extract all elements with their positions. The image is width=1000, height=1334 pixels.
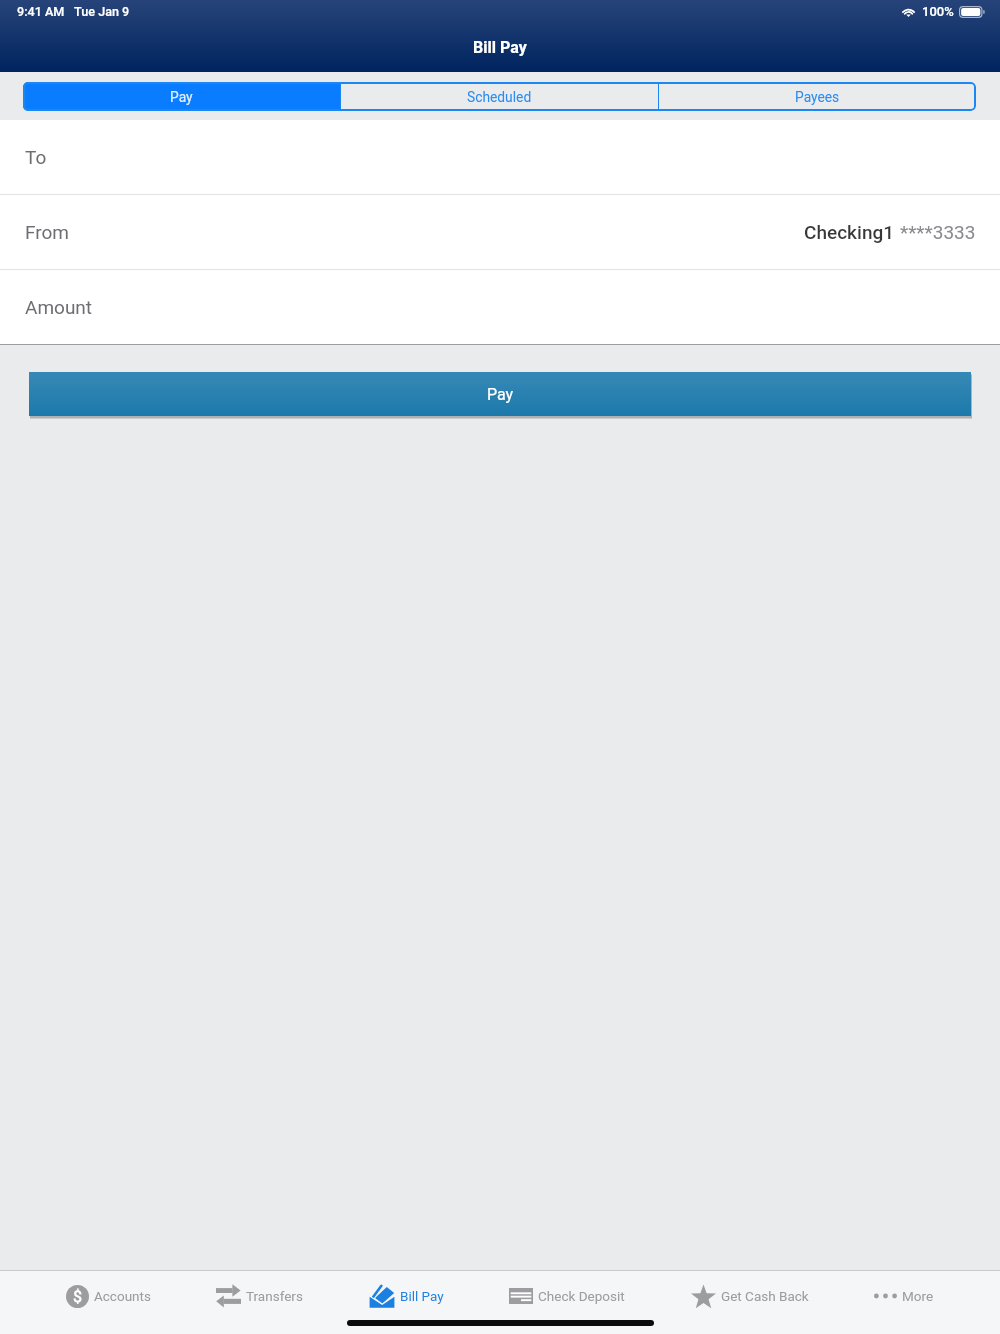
staticText: Transfers — [246, 1288, 303, 1304]
staticText: Check Deposit — [538, 1288, 625, 1304]
button[interactable]: Transfers — [216, 1271, 303, 1321]
staticText: 9:41 AM — [17, 4, 65, 19]
button[interactable]: Get Cash Back — [691, 1271, 809, 1321]
staticText: Tue Jan 9 — [74, 4, 130, 19]
button[interactable]: Bill Pay — [369, 1271, 444, 1321]
staticText: $ — [73, 1287, 83, 1306]
staticText: Bill Pay — [473, 38, 527, 57]
button[interactable]: Accounts — [66, 1271, 151, 1321]
button[interactable]: Pay — [29, 372, 971, 416]
button[interactable]: Payees — [659, 82, 976, 111]
staticText: Checking1 — [804, 221, 895, 243]
button[interactable]: To — [25, 120, 976, 194]
button[interactable]: Amount — [25, 270, 976, 344]
button[interactable]: Scheduled — [341, 82, 658, 111]
staticText: From — [25, 221, 70, 243]
button[interactable]: More — [874, 1271, 934, 1321]
staticText: Bill Pay — [400, 1288, 444, 1304]
button[interactable]: From — [25, 195, 976, 269]
staticText: Amount — [25, 296, 93, 318]
staticText: Pay — [487, 385, 514, 404]
button[interactable]: Pay — [23, 82, 340, 111]
staticText: ****3333 — [900, 221, 976, 243]
staticText: Scheduled — [467, 89, 532, 105]
staticText: More — [902, 1288, 934, 1304]
staticText: Accounts — [94, 1288, 151, 1304]
staticText: Get Cash Back — [721, 1288, 809, 1304]
staticText: To — [25, 146, 47, 168]
staticText: Pay — [170, 89, 193, 105]
button[interactable]: Check Deposit — [509, 1271, 625, 1321]
staticText: 100% — [922, 4, 954, 19]
staticText: Payees — [795, 89, 840, 105]
